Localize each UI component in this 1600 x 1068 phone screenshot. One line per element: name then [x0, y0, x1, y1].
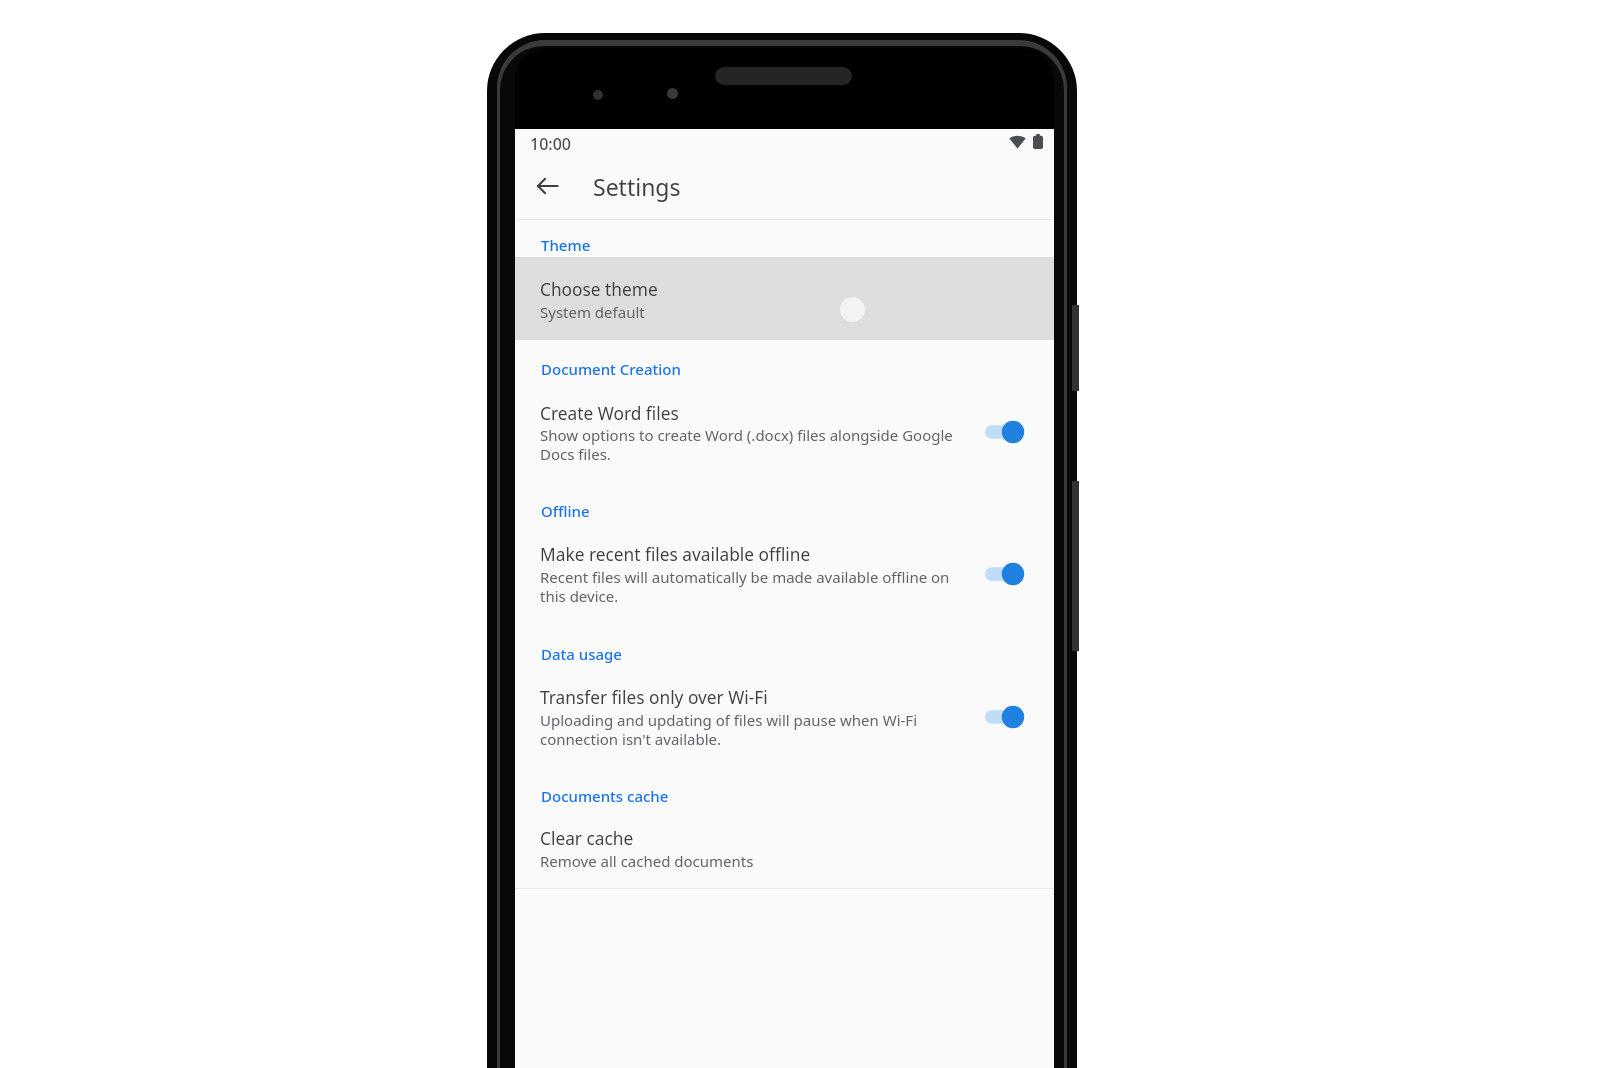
staticText: Data usage — [541, 644, 622, 664]
staticText: Transfer files only over Wi-Fi — [540, 686, 768, 710]
button[interactable]: Toggle setting, on — [975, 411, 1031, 453]
staticText: Remove all cached documents — [540, 851, 754, 871]
staticText: Choose theme — [540, 278, 658, 302]
staticText: Recent files will automatically be made … — [540, 567, 950, 606]
staticText: Document Creation — [541, 359, 681, 379]
button[interactable]: Toggle setting, on — [975, 553, 1031, 595]
staticText: Settings — [593, 171, 681, 202]
button[interactable] — [515, 812, 1054, 880]
staticText: Create Word files — [540, 402, 679, 426]
button[interactable] — [515, 257, 1054, 340]
button[interactable]: Navigate back — [525, 164, 569, 208]
staticText: Show options to create Word (.docx) file… — [540, 425, 953, 464]
staticText: Uploading and updating of files will pau… — [540, 710, 917, 749]
button[interactable] — [515, 524, 1054, 612]
staticText: 10:00 — [530, 133, 571, 155]
button[interactable] — [515, 382, 1054, 470]
button[interactable]: Toggle setting, on — [975, 696, 1031, 738]
staticText: Offline — [541, 501, 590, 521]
staticText: Documents cache — [541, 786, 669, 806]
staticText: Make recent files available offline — [540, 543, 811, 567]
staticText: System default — [540, 302, 645, 322]
staticText: Theme — [541, 235, 591, 255]
staticText: Clear cache — [540, 827, 634, 851]
button[interactable] — [515, 667, 1054, 755]
